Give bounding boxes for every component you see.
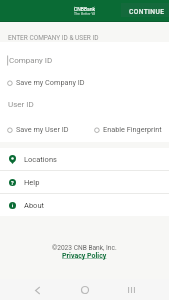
staticText: Save my Company ID (16, 78, 85, 87)
button[interactable]: User ID (0, 99, 169, 110)
button[interactable]: Enable Fingerprint (87, 124, 162, 134)
staticText: Save my User ID (16, 125, 69, 134)
button[interactable]: ? (0, 171, 169, 193)
staticText: Help (24, 178, 40, 187)
staticText: Company ID (9, 56, 53, 65)
button[interactable]: Save my Company ID (0, 77, 85, 87)
staticText: ENTER COMPANY ID & USER ID (8, 34, 99, 42)
button[interactable]: Company ID (0, 55, 169, 66)
button[interactable]: Locations (0, 148, 169, 170)
staticText: Enable Fingerprint (103, 125, 162, 134)
staticText: CONTINUE (129, 8, 165, 16)
staticText: ©2023 CNB Bank, Inc. (52, 244, 117, 252)
staticText: Locations (24, 155, 57, 164)
button[interactable]: Home (77, 282, 93, 298)
button[interactable]: Back (29, 282, 45, 298)
button[interactable]: Recent apps (123, 282, 139, 298)
button[interactable]: Privacy Policy (62, 252, 107, 260)
staticText: About (24, 201, 44, 210)
staticText: ? (11, 180, 14, 186)
button[interactable]: Save my User ID (0, 124, 69, 134)
staticText: User ID (8, 100, 34, 109)
staticText: The Better Way (74, 12, 95, 15)
button[interactable]: About (0, 194, 169, 216)
staticText: CNBBank (74, 6, 95, 12)
button[interactable]: CONTINUE (121, 3, 169, 17)
